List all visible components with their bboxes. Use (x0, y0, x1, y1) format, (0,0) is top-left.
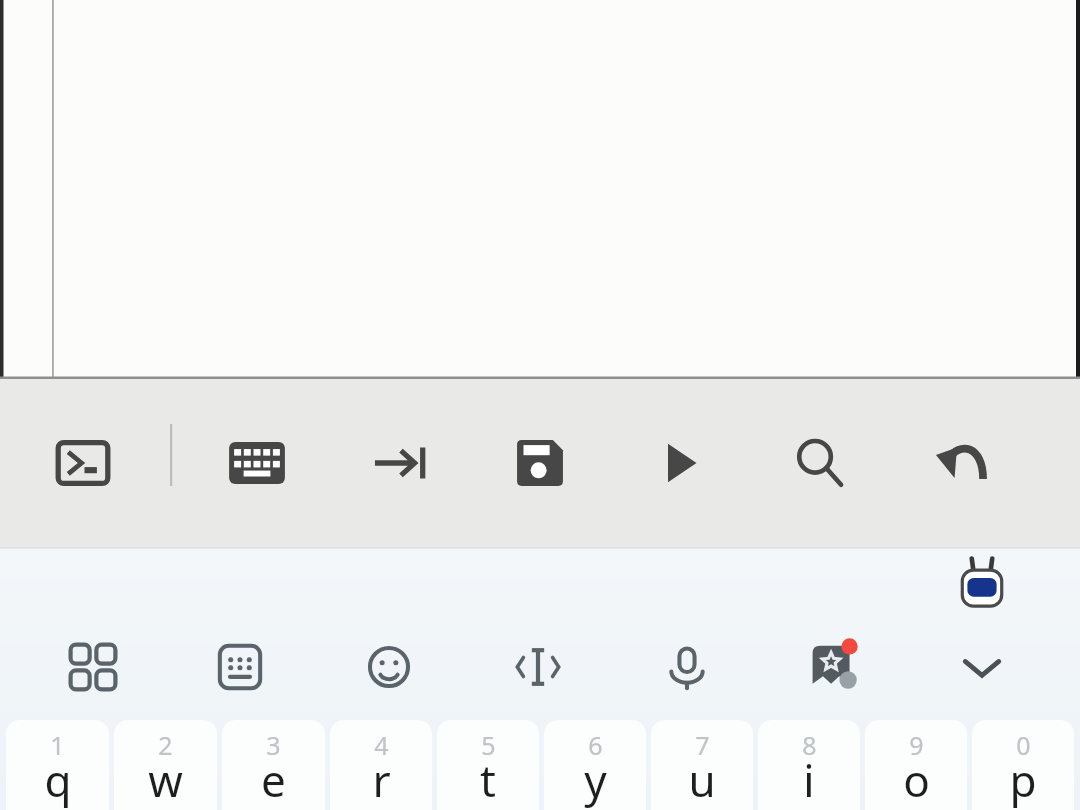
staticText: 1 (50, 728, 65, 762)
staticText: o (903, 750, 930, 810)
button[interactable]: Undo (917, 418, 1007, 508)
button[interactable]: Voice input (641, 621, 733, 713)
button[interactable]: Save (495, 418, 585, 508)
button[interactable]: 0 (972, 720, 1074, 810)
button[interactable]: Terminal (38, 418, 128, 508)
staticText: u (688, 750, 716, 810)
button[interactable]: Keyboard layout (194, 621, 286, 713)
staticText: 5 (481, 728, 496, 762)
staticText: 7 (695, 728, 710, 762)
button[interactable]: 9 (865, 720, 967, 810)
button[interactable]: 8 (758, 720, 860, 810)
button[interactable]: 3 (222, 720, 325, 810)
staticText: 9 (909, 728, 924, 762)
button[interactable]: 5 (437, 720, 539, 810)
button[interactable]: 1 (6, 720, 109, 810)
button[interactable]: 4 (330, 720, 432, 810)
staticText: y (584, 750, 607, 810)
staticText: i (803, 750, 815, 810)
staticText: 0 (1016, 728, 1031, 762)
staticText: q (44, 750, 72, 810)
button[interactable]: Keyboard (212, 418, 302, 508)
staticText: r (372, 750, 391, 810)
button[interactable]: 2 (114, 720, 217, 810)
staticText: t (480, 750, 496, 810)
staticText: 2 (158, 728, 173, 762)
button[interactable]: 7 (651, 720, 753, 810)
staticText: 6 (588, 728, 603, 762)
staticText: e (261, 750, 286, 810)
button[interactable]: Run (636, 418, 726, 508)
button[interactable]: 6 (544, 720, 646, 810)
button[interactable]: Hide keyboard (936, 621, 1028, 713)
button[interactable]: Emoji (343, 621, 435, 713)
button[interactable]: Stickers (789, 621, 881, 713)
staticText: w (148, 750, 183, 810)
staticText: 8 (802, 728, 817, 762)
button[interactable]: Search (775, 418, 865, 508)
button[interactable]: Move cursor (492, 621, 584, 713)
staticText: 4 (374, 728, 389, 762)
staticText: p (1009, 750, 1037, 810)
button[interactable]: Tab (356, 418, 446, 508)
button[interactable]: Apps (47, 621, 139, 713)
staticText: 3 (266, 728, 281, 762)
